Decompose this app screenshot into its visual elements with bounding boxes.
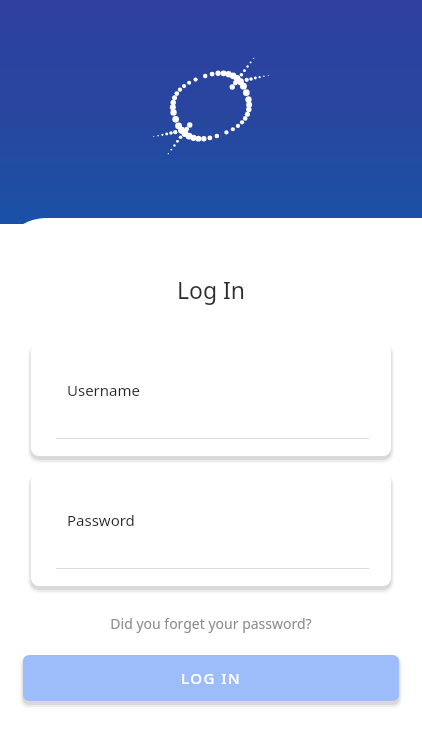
staticText: Username (67, 380, 140, 400)
staticText: Log In (0, 274, 422, 305)
staticText: LOG IN (181, 668, 242, 688)
staticText: Password (67, 510, 135, 530)
button[interactable]: Password (31, 473, 391, 586)
other: App logo (147, 42, 275, 170)
button[interactable]: Username (31, 343, 391, 456)
staticText: Did you forget your password? (0, 614, 422, 633)
button[interactable]: Did you forget your password? (0, 608, 422, 639)
button[interactable]: LOG IN (23, 655, 399, 701)
